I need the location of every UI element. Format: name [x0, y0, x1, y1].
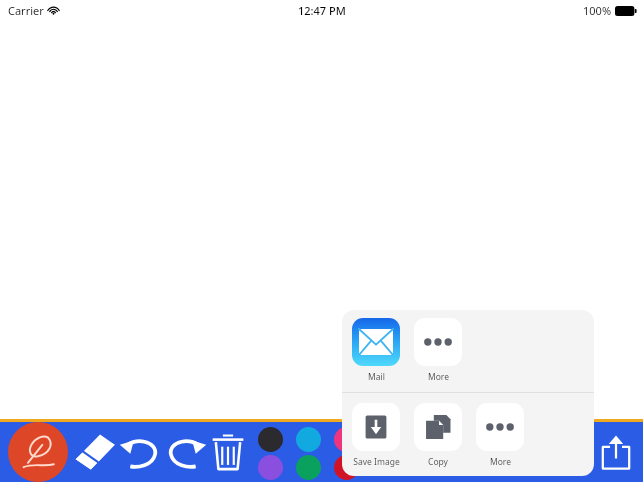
staticText: 100% — [583, 3, 612, 18]
button[interactable]: More — [476, 403, 524, 468]
button[interactable]: Eraser — [74, 432, 116, 472]
button[interactable]: Pen tool — [8, 422, 68, 482]
button[interactable]: Mail — [352, 318, 400, 383]
staticText: 12:47 PM — [298, 3, 346, 18]
staticText: Save Image — [353, 456, 400, 468]
staticText: More — [490, 456, 511, 468]
staticText: Carrier — [8, 3, 44, 18]
button[interactable]: Colour — [296, 455, 321, 480]
button[interactable]: Copy — [414, 403, 462, 468]
button[interactable]: More — [414, 318, 462, 383]
button[interactable]: Colour — [296, 427, 321, 452]
staticText: Copy — [428, 456, 448, 468]
staticText: More — [428, 371, 449, 383]
button[interactable]: Redo — [164, 434, 208, 470]
button[interactable]: Share — [601, 434, 631, 470]
button[interactable]: Colour — [258, 455, 283, 480]
button[interactable]: Colour — [334, 427, 359, 452]
button[interactable]: Save Image — [352, 403, 400, 468]
button[interactable]: Colour — [258, 427, 283, 452]
button[interactable]: Colour — [334, 455, 359, 480]
button[interactable]: Undo — [118, 434, 162, 470]
staticText: Mail — [368, 371, 385, 383]
button[interactable]: Delete — [212, 433, 244, 471]
